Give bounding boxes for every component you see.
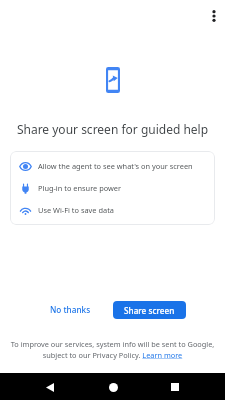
button[interactable]: More options (203, 5, 225, 27)
button[interactable]: Allow the agent to see what's on your sc… (10, 155, 215, 177)
button[interactable]: Home (100, 374, 126, 400)
button[interactable]: Plug-in to ensure power (10, 177, 215, 199)
staticText: No thanks (50, 304, 91, 315)
button[interactable]: Recent apps (162, 374, 188, 400)
staticText: Use Wi-Fi to save data (38, 205, 114, 215)
button[interactable]: Share screen (113, 301, 186, 319)
staticText: To improve our services, system info wil… (5, 339, 220, 360)
staticText: Share your screen for guided help (0, 121, 225, 137)
staticText: Allow the agent to see what's on your sc… (38, 161, 193, 171)
button[interactable]: Back (37, 374, 63, 400)
button[interactable]: No thanks (43, 300, 98, 319)
staticText: Share screen (124, 305, 175, 316)
staticText: Plug-in to ensure power (38, 183, 122, 193)
button[interactable]: Use Wi-Fi to save data (10, 199, 215, 221)
